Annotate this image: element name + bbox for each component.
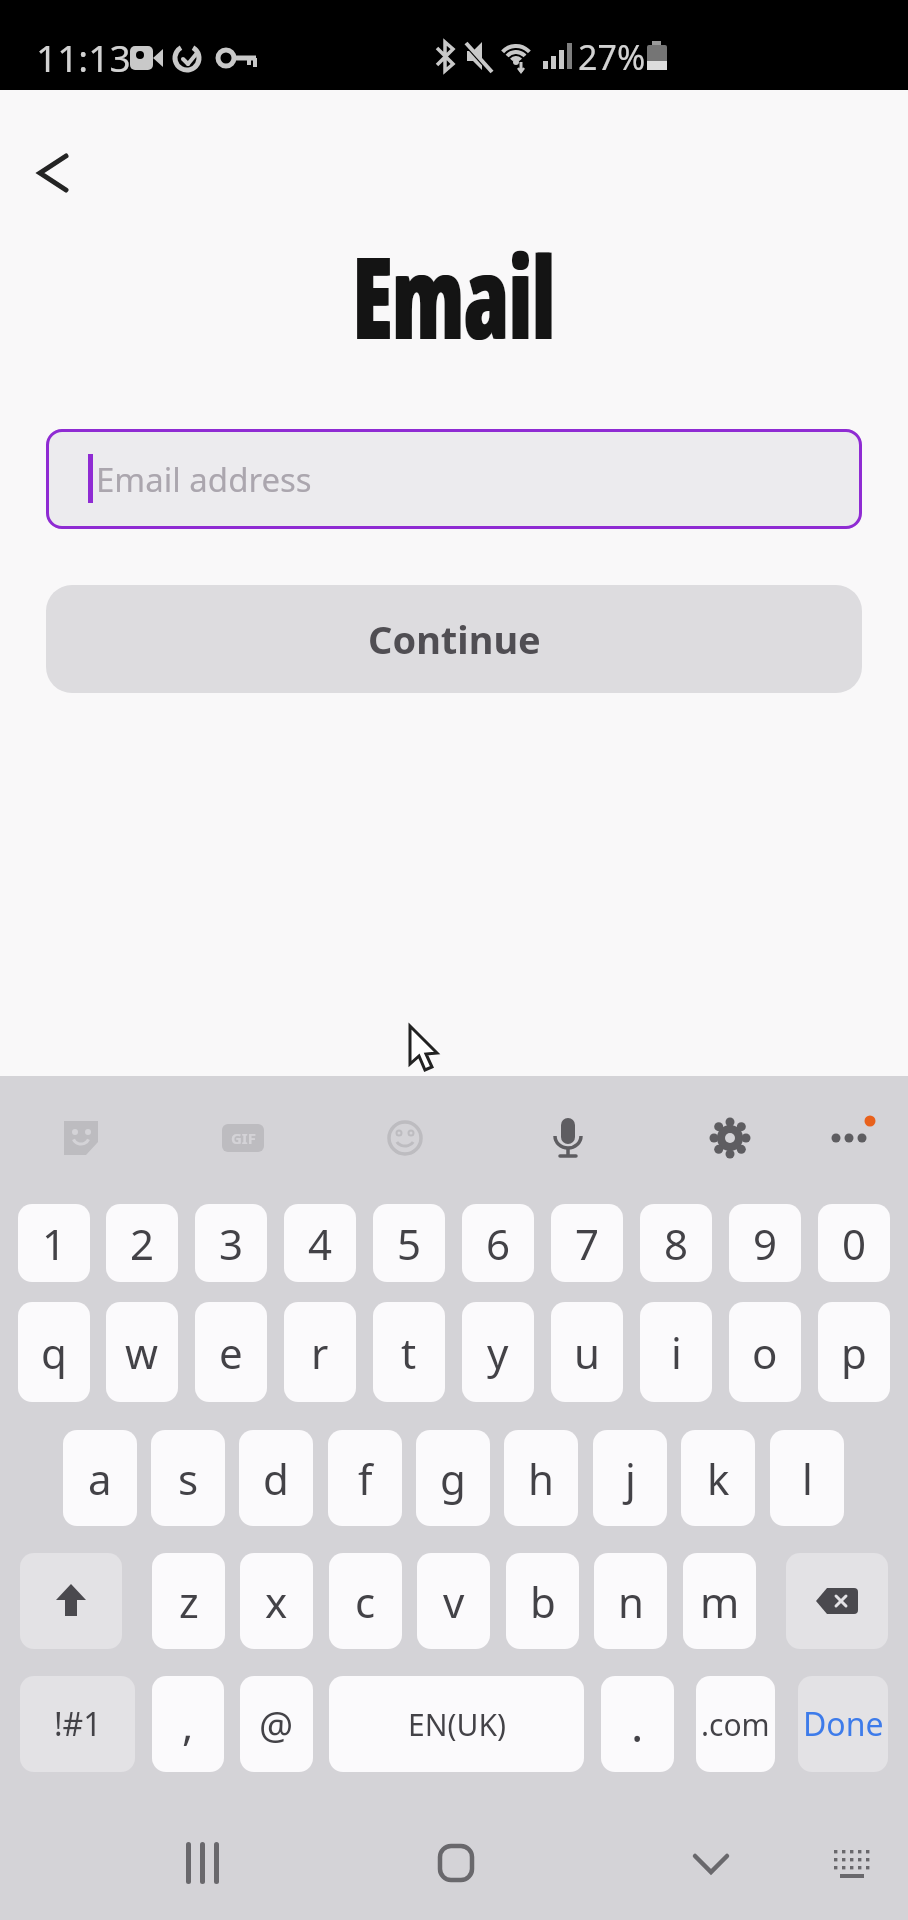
button[interactable]: q bbox=[18, 1302, 90, 1402]
staticText: !#1 bbox=[54, 1702, 102, 1746]
staticText: 0 bbox=[842, 1215, 867, 1272]
staticText: l bbox=[802, 1450, 813, 1507]
staticText: s bbox=[178, 1450, 199, 1507]
staticText: 1 bbox=[42, 1215, 67, 1272]
staticText: 6 bbox=[486, 1215, 511, 1272]
button[interactable]: k bbox=[681, 1430, 755, 1526]
staticText: Continue bbox=[368, 613, 541, 665]
button[interactable]: r bbox=[284, 1302, 356, 1402]
staticText: EN(UK) bbox=[408, 1704, 506, 1745]
staticText: u bbox=[574, 1324, 600, 1381]
button[interactable]: n bbox=[594, 1553, 667, 1649]
staticText: m bbox=[700, 1573, 740, 1630]
button[interactable]: f bbox=[328, 1430, 402, 1526]
button[interactable]: p bbox=[818, 1302, 890, 1402]
staticText: 9 bbox=[753, 1215, 778, 1272]
staticText: 8 bbox=[664, 1215, 689, 1272]
button[interactable]: 3 bbox=[195, 1204, 267, 1282]
button[interactable]: l bbox=[770, 1430, 844, 1526]
button[interactable] bbox=[302, 1820, 605, 1920]
staticText: 3 bbox=[219, 1215, 244, 1272]
button[interactable]: e bbox=[195, 1302, 267, 1402]
staticText: x bbox=[265, 1573, 288, 1630]
button[interactable]: j bbox=[593, 1430, 667, 1526]
button[interactable]: .com bbox=[696, 1676, 775, 1772]
staticText: t bbox=[401, 1324, 417, 1381]
button[interactable]: , bbox=[152, 1676, 224, 1772]
button[interactable]: 8 bbox=[640, 1204, 712, 1282]
staticText: c bbox=[355, 1573, 376, 1630]
button[interactable]: Email address bbox=[46, 429, 862, 529]
staticText: Email bbox=[351, 217, 554, 345]
button[interactable]: !#1 bbox=[20, 1676, 135, 1772]
button[interactable] bbox=[786, 1553, 888, 1649]
button[interactable]: o bbox=[729, 1302, 801, 1402]
button[interactable]: a bbox=[63, 1430, 137, 1526]
button[interactable]: Continue bbox=[46, 585, 862, 693]
button[interactable]: @ bbox=[240, 1676, 313, 1772]
staticText: 11:13 bbox=[36, 32, 131, 82]
button[interactable]: 1 bbox=[18, 1204, 90, 1282]
staticText: . bbox=[631, 1693, 644, 1756]
staticText: b bbox=[530, 1573, 556, 1630]
staticText: 2 bbox=[130, 1215, 155, 1272]
button[interactable]: h bbox=[504, 1430, 578, 1526]
staticText: a bbox=[88, 1450, 112, 1507]
staticText: Done bbox=[803, 1702, 884, 1746]
button[interactable]: x bbox=[240, 1553, 313, 1649]
button[interactable]: . bbox=[601, 1676, 674, 1772]
button[interactable]: 9 bbox=[729, 1204, 801, 1282]
staticText: GIF bbox=[231, 1128, 256, 1148]
button[interactable]: c bbox=[329, 1553, 402, 1649]
staticText: w bbox=[125, 1324, 159, 1381]
staticText: v bbox=[443, 1573, 465, 1630]
staticText: r bbox=[311, 1324, 329, 1381]
staticText: 5 bbox=[397, 1215, 422, 1272]
button[interactable]: 4 bbox=[284, 1204, 356, 1282]
staticText: y bbox=[487, 1324, 509, 1381]
staticText: @ bbox=[259, 1698, 294, 1750]
button[interactable]: b bbox=[506, 1553, 579, 1649]
button[interactable]: i bbox=[640, 1302, 712, 1402]
button[interactable]: w bbox=[106, 1302, 178, 1402]
staticText: 4 bbox=[308, 1215, 333, 1272]
button[interactable]: g bbox=[416, 1430, 490, 1526]
button[interactable]: 2 bbox=[106, 1204, 178, 1282]
button[interactable]: d bbox=[239, 1430, 313, 1526]
button[interactable]: m bbox=[683, 1553, 756, 1649]
staticText: Email bbox=[354, 217, 557, 345]
staticText: i bbox=[671, 1324, 682, 1381]
button[interactable]: u bbox=[551, 1302, 623, 1402]
button[interactable] bbox=[0, 1820, 302, 1920]
button[interactable] bbox=[20, 140, 86, 206]
button[interactable]: z bbox=[152, 1553, 225, 1649]
button[interactable]: y bbox=[462, 1302, 534, 1402]
button[interactable]: Done bbox=[798, 1676, 888, 1772]
button[interactable]: 0 bbox=[818, 1204, 890, 1282]
staticText: , bbox=[182, 1696, 194, 1753]
button[interactable] bbox=[20, 1553, 122, 1649]
staticText: f bbox=[358, 1450, 373, 1507]
staticText: p bbox=[841, 1324, 867, 1381]
staticText: j bbox=[625, 1450, 636, 1507]
button[interactable]: EN(UK) bbox=[329, 1676, 584, 1772]
button[interactable] bbox=[605, 1820, 908, 1920]
staticText: Email bbox=[353, 217, 555, 345]
staticText: k bbox=[707, 1450, 730, 1507]
staticText: o bbox=[752, 1324, 778, 1381]
staticText: q bbox=[41, 1324, 67, 1381]
staticText: d bbox=[263, 1450, 289, 1507]
staticText: g bbox=[440, 1450, 466, 1507]
staticText: .com bbox=[701, 1704, 770, 1745]
button[interactable]: t bbox=[373, 1302, 445, 1402]
staticText: n bbox=[618, 1573, 644, 1630]
button[interactable]: 6 bbox=[462, 1204, 534, 1282]
staticText: z bbox=[179, 1573, 199, 1630]
button[interactable]: v bbox=[417, 1553, 490, 1649]
staticText: h bbox=[528, 1450, 554, 1507]
staticText: Email address bbox=[96, 457, 312, 502]
button[interactable]: 5 bbox=[373, 1204, 445, 1282]
button[interactable]: 7 bbox=[551, 1204, 623, 1282]
button[interactable]: s bbox=[151, 1430, 225, 1526]
staticText: 27% bbox=[578, 34, 646, 80]
